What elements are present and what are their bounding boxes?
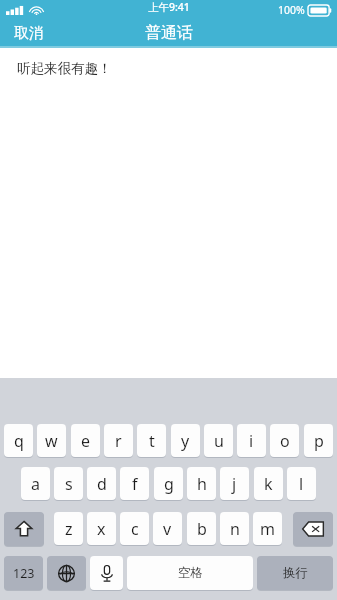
button[interactable]: k <box>254 467 283 500</box>
button[interactable]: b <box>187 512 216 545</box>
button[interactable]: z <box>54 512 83 545</box>
staticText: 上午9:41 <box>148 0 190 14</box>
button[interactable]: Dictation <box>90 556 123 590</box>
button[interactable]: v <box>153 512 182 545</box>
button[interactable]: o <box>270 424 299 457</box>
staticText: 123 <box>13 565 35 582</box>
staticText: e <box>81 430 91 452</box>
button[interactable]: Shift <box>4 512 44 546</box>
staticText: l <box>299 473 304 495</box>
staticText: s <box>65 473 73 495</box>
staticText: b <box>197 518 207 540</box>
button[interactable]: n <box>220 512 249 545</box>
staticText: i <box>249 430 254 452</box>
staticText: n <box>230 518 240 540</box>
button[interactable]: Change keyboard <box>47 556 86 590</box>
button[interactable]: f <box>120 467 149 500</box>
button[interactable]: s <box>54 467 83 500</box>
button[interactable]: i <box>237 424 266 457</box>
button[interactable]: r <box>104 424 133 457</box>
staticText: u <box>214 430 224 452</box>
staticText: 取消 <box>14 24 44 43</box>
staticText: p <box>314 430 324 452</box>
button[interactable]: Numbers <box>4 556 43 590</box>
staticText: 换行 <box>283 565 308 581</box>
button[interactable]: d <box>87 467 116 500</box>
staticText: 普通话 <box>145 23 193 43</box>
button[interactable]: m <box>253 512 282 545</box>
staticText: d <box>97 473 107 495</box>
staticText: o <box>280 430 290 452</box>
staticText: 听起来很有趣！ <box>17 60 112 77</box>
staticText: w <box>45 430 58 452</box>
staticText: r <box>115 430 122 452</box>
button[interactable]: x <box>87 512 116 545</box>
button[interactable]: Space <box>127 556 253 590</box>
staticText: x <box>97 518 106 540</box>
staticText: g <box>164 473 174 495</box>
button[interactable]: p <box>304 424 333 457</box>
button[interactable]: Return <box>257 556 333 590</box>
staticText: t <box>149 430 155 452</box>
staticText: h <box>197 473 207 495</box>
staticText: 空格 <box>178 565 203 581</box>
staticText: z <box>65 518 73 540</box>
staticText: y <box>181 430 190 452</box>
button[interactable]: q <box>4 424 33 457</box>
staticText: q <box>14 430 24 452</box>
button[interactable]: g <box>154 467 183 500</box>
button[interactable]: c <box>120 512 149 545</box>
staticText: 100% <box>278 3 305 17</box>
staticText: m <box>260 518 275 540</box>
button[interactable]: e <box>71 424 100 457</box>
button[interactable]: Backspace <box>293 512 333 546</box>
button[interactable]: 取消 <box>0 22 58 45</box>
button[interactable]: h <box>187 467 216 500</box>
staticText: a <box>31 473 40 495</box>
button[interactable]: l <box>287 467 316 500</box>
button[interactable]: t <box>137 424 166 457</box>
staticText: f <box>132 473 138 495</box>
staticText: j <box>232 473 237 495</box>
button[interactable]: j <box>220 467 249 500</box>
button[interactable]: y <box>171 424 200 457</box>
staticText: v <box>163 518 172 540</box>
staticText: k <box>264 473 273 495</box>
button[interactable]: w <box>37 424 66 457</box>
staticText: c <box>131 518 139 540</box>
button[interactable]: a <box>21 467 50 500</box>
button[interactable]: u <box>204 424 233 457</box>
